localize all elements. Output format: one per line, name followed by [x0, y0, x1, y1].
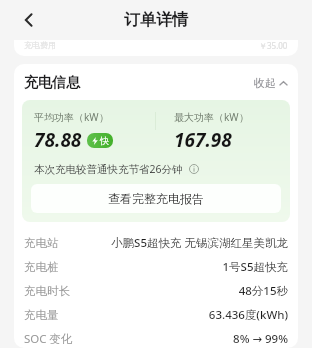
- staticText: 充电费用: [24, 40, 56, 50]
- staticText: 充电桩: [24, 260, 102, 274]
- button[interactable]: Back: [12, 3, 46, 37]
- staticText: ￥35.00: [259, 40, 288, 51]
- staticText: 查看完整充电报告: [108, 191, 204, 206]
- button[interactable]: 充电费用: [14, 40, 298, 56]
- staticText: 平均功率（kW）: [34, 110, 109, 124]
- staticText: 订单详情: [124, 10, 188, 30]
- staticText: 最大功率（kW）: [174, 110, 249, 124]
- staticText: 63.436度(kWh): [102, 307, 288, 323]
- button[interactable]: 查看完整充电报告: [31, 184, 281, 213]
- staticText: 充电站: [24, 236, 102, 250]
- button[interactable]: 充电站: [14, 231, 298, 255]
- staticText: 1号S5超快充: [102, 259, 288, 275]
- button[interactable]: 充电桩: [14, 255, 298, 279]
- button[interactable]: 收起: [250, 74, 292, 92]
- button[interactable]: 充电量: [14, 303, 298, 327]
- staticText: 快: [100, 135, 109, 146]
- staticText: SOC 变化: [24, 331, 102, 344]
- staticText: 8% → 99%: [102, 331, 288, 344]
- button[interactable]: 说明: [187, 162, 201, 176]
- staticText: 充电信息: [24, 74, 80, 92]
- staticText: 充电量: [24, 308, 102, 322]
- staticText: 小鹏S5超快充 无锡滨湖红星美凯龙站: [102, 235, 288, 251]
- staticText: 充电时长: [24, 284, 102, 298]
- staticText: 48分15秒: [102, 283, 288, 299]
- staticText: 167.98: [174, 127, 232, 153]
- staticText: 收起: [254, 76, 276, 90]
- button[interactable]: SOC 变化: [14, 327, 298, 348]
- staticText: 78.88: [34, 127, 82, 153]
- staticText: 本次充电较普通快充节省26分钟: [34, 162, 183, 176]
- button[interactable]: 充电时长: [14, 279, 298, 303]
